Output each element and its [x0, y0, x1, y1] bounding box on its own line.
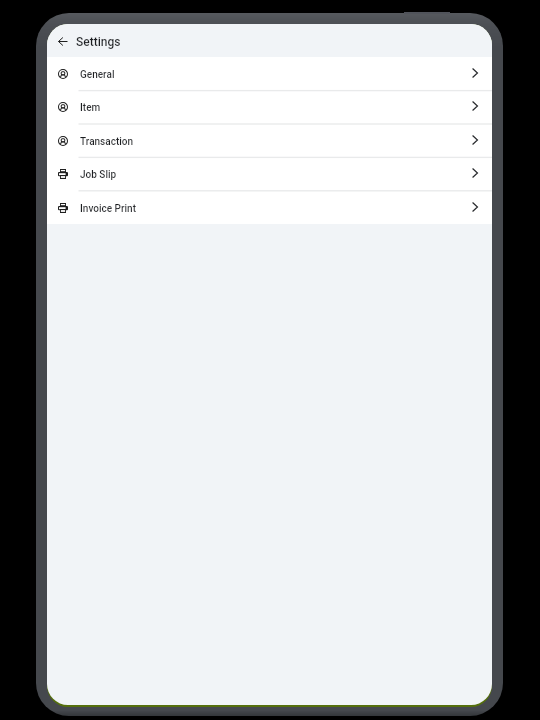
staticText: Item	[80, 102, 101, 114]
staticText: Transaction	[80, 136, 134, 148]
button[interactable]: Item	[47, 90, 492, 123]
staticText: Settings	[76, 35, 121, 49]
button[interactable]: Transaction	[47, 124, 492, 157]
button[interactable]: Invoice Print	[47, 191, 492, 224]
staticText: Invoice Print	[80, 203, 136, 215]
button[interactable]: Job Slip	[47, 157, 492, 190]
button[interactable]: Back	[51, 27, 75, 56]
staticText: General	[80, 69, 115, 81]
staticText: Job Slip	[80, 169, 117, 181]
button[interactable]: General	[47, 57, 492, 90]
